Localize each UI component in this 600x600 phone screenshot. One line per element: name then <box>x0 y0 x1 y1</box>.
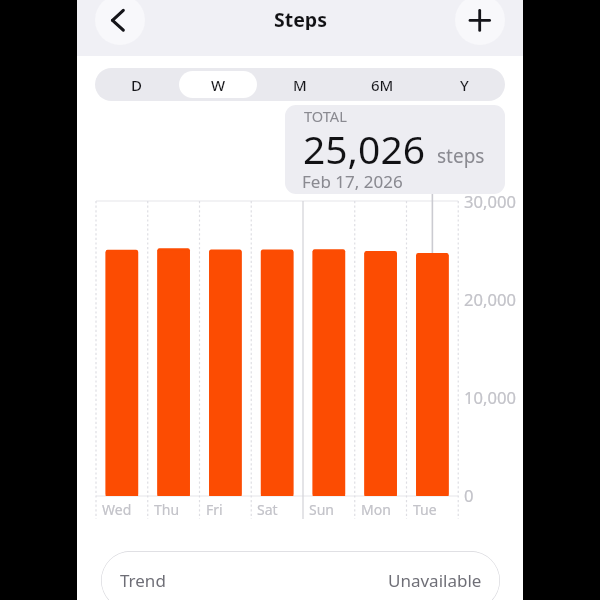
staticText: 30,000 <box>464 190 516 213</box>
staticText: Thu <box>154 500 180 519</box>
staticText: W <box>211 75 226 95</box>
staticText: Sun <box>309 500 334 519</box>
button[interactable]: Add <box>455 0 505 45</box>
staticText: Tue <box>413 500 437 519</box>
staticText: 25,026 <box>303 122 425 175</box>
staticText: steps <box>437 143 485 169</box>
button[interactable]: M <box>259 68 341 101</box>
staticText: M <box>293 75 307 95</box>
staticText: 6M <box>371 75 394 95</box>
staticText: Unavailable <box>388 569 482 592</box>
button[interactable]: D <box>95 68 177 101</box>
staticText: D <box>131 75 142 95</box>
staticText: Sat <box>257 500 278 519</box>
button[interactable]: Back <box>95 0 145 45</box>
staticText: 20,000 <box>464 288 516 311</box>
staticText: Mon <box>361 500 391 519</box>
staticText: TOTAL <box>304 106 347 126</box>
staticText: 10,000 <box>464 386 516 409</box>
staticText: 0 <box>464 484 474 507</box>
staticText: Trend <box>120 569 166 592</box>
staticText: Steps <box>274 6 327 30</box>
button[interactable]: W <box>177 68 259 101</box>
staticText: Wed <box>102 500 132 519</box>
button[interactable]: 6M <box>341 68 423 101</box>
staticText: Feb 17, 2026 <box>302 170 403 193</box>
button[interactable]: TOTAL <box>285 105 505 194</box>
staticText: Y <box>460 75 469 95</box>
button[interactable]: Trend <box>101 551 500 600</box>
button[interactable]: Y <box>423 68 505 101</box>
staticText: Fri <box>206 500 223 519</box>
